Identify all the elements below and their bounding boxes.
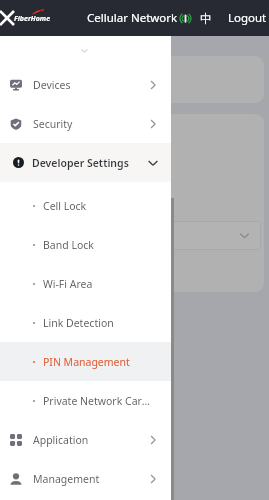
staticText: Management: [33, 472, 100, 486]
button[interactable]: Logout: [226, 0, 269, 36]
button[interactable]: Devices: [0, 65, 171, 104]
staticText: FiberHome: [14, 14, 51, 24]
staticText: Security: [33, 117, 73, 131]
button[interactable]: Language: [197, 0, 215, 36]
staticText: Band Lock: [43, 238, 94, 252]
button[interactable]: Application: [0, 420, 171, 459]
button[interactable]: Cell Lock: [0, 186, 171, 225]
button[interactable]: Private Network Card S…: [0, 381, 171, 420]
button[interactable]: Signal status: [176, 0, 194, 36]
staticText: Cellular Network: [87, 10, 178, 26]
button[interactable]: PIN Management: [0, 342, 171, 381]
button[interactable]: Security: [0, 104, 171, 143]
staticText: Cell Lock: [43, 199, 87, 213]
button[interactable]: Developer Settings: [0, 143, 171, 182]
button[interactable]: Link Detection: [0, 303, 171, 342]
staticText: Private Network Card S…: [43, 394, 154, 408]
button[interactable]: Close: [0, 3, 17, 33]
button[interactable]: Band Lock: [0, 225, 171, 264]
staticText: Application: [33, 433, 89, 447]
button[interactable]: Select option: [7, 221, 261, 250]
staticText: Wi-Fi Area: [43, 277, 93, 291]
staticText: PIN Management: [43, 355, 130, 369]
staticText: Logout: [228, 10, 267, 26]
staticText: Devices: [33, 78, 71, 92]
button[interactable]: Wi-Fi Area: [0, 264, 171, 303]
staticText: Developer Settings: [32, 156, 129, 170]
staticText: 中: [200, 11, 212, 26]
staticText: Link Detection: [43, 316, 114, 330]
button[interactable]: Management: [0, 459, 171, 498]
